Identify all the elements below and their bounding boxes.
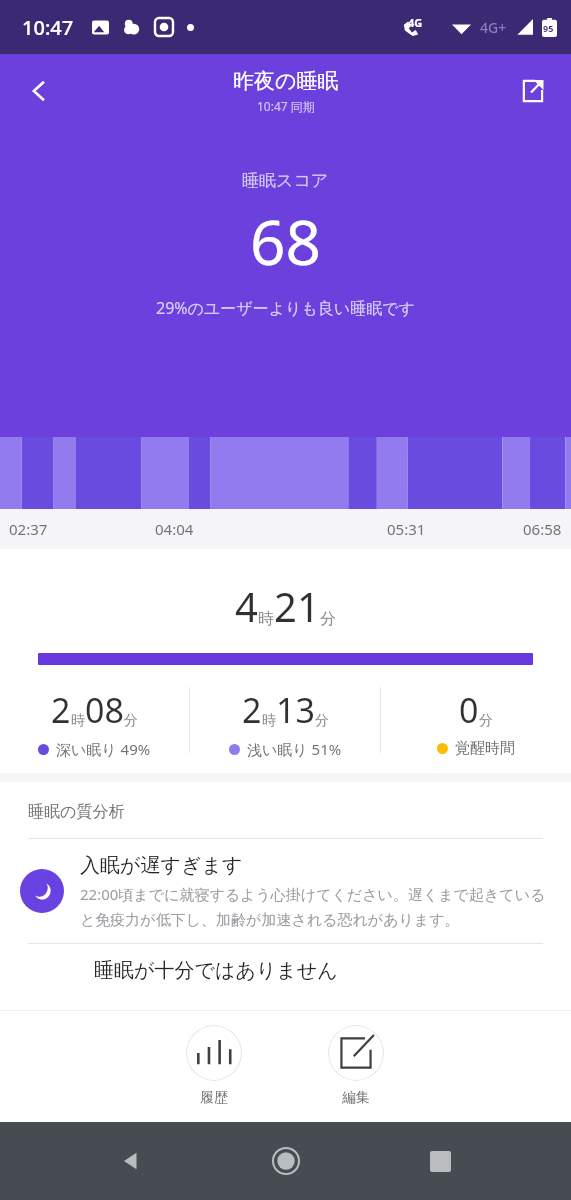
staticText: 21 [274,579,320,633]
staticText: 2 [242,687,262,733]
staticText: 分 [124,712,138,730]
staticText: 履歴 [200,1089,228,1107]
other: Edit [328,1025,384,1081]
staticText: 昨夜の睡眠 [233,68,339,94]
staticText: 分 [315,712,329,730]
staticText: 68 [250,199,321,283]
staticText: 02:37 [9,519,48,539]
button[interactable]: Edit [318,1021,394,1111]
staticText: 浅い眠り 51% [247,739,342,759]
staticText: 時 [262,712,276,730]
staticText: 13 [276,687,315,733]
staticText: 覚醒時間 [455,739,515,758]
staticText: 29%のユーザーよりも良い睡眠です [156,297,415,319]
staticText: 時 [71,712,85,730]
staticText: 分 [320,609,336,629]
staticText: 10:47 [22,14,74,41]
staticText: 95 [543,22,554,34]
staticText: 4 [235,579,258,633]
button[interactable]: Back [14,65,66,117]
staticText: 睡眠が十分ではありません [94,958,338,983]
staticText: 編集 [342,1089,370,1107]
button[interactable]: Back [107,1137,155,1185]
button[interactable]: Recent apps [416,1137,464,1185]
staticText: 05:31 [387,519,426,539]
button[interactable]: History [176,1021,252,1111]
staticText: 深い眠り 49% [56,739,151,759]
staticText: 睡眠スコア [242,170,329,191]
staticText: 10:47 同期 [257,98,315,114]
staticText: 04:04 [155,519,194,539]
staticText: 睡眠の質分析 [28,802,125,822]
staticText: 分 [479,712,493,730]
staticText: 2 [51,687,71,733]
staticText: 08 [85,687,124,733]
button[interactable]: Share [507,66,557,116]
button[interactable]: 入眠が遅すぎます [0,839,571,943]
staticText: 06:58 [523,519,562,539]
staticText: 入眠が遅すぎます [80,853,243,878]
button[interactable]: Home [262,1137,310,1185]
staticText: 0 [459,687,479,733]
staticText: 4G [408,15,423,30]
staticText: 22:00頃までに就寝するよう心掛けてください。遅くまで起きていると免疫力が低下… [80,884,549,929]
staticText: 時 [258,609,274,629]
staticText: 4G+ [480,18,507,37]
other: History [186,1025,242,1081]
